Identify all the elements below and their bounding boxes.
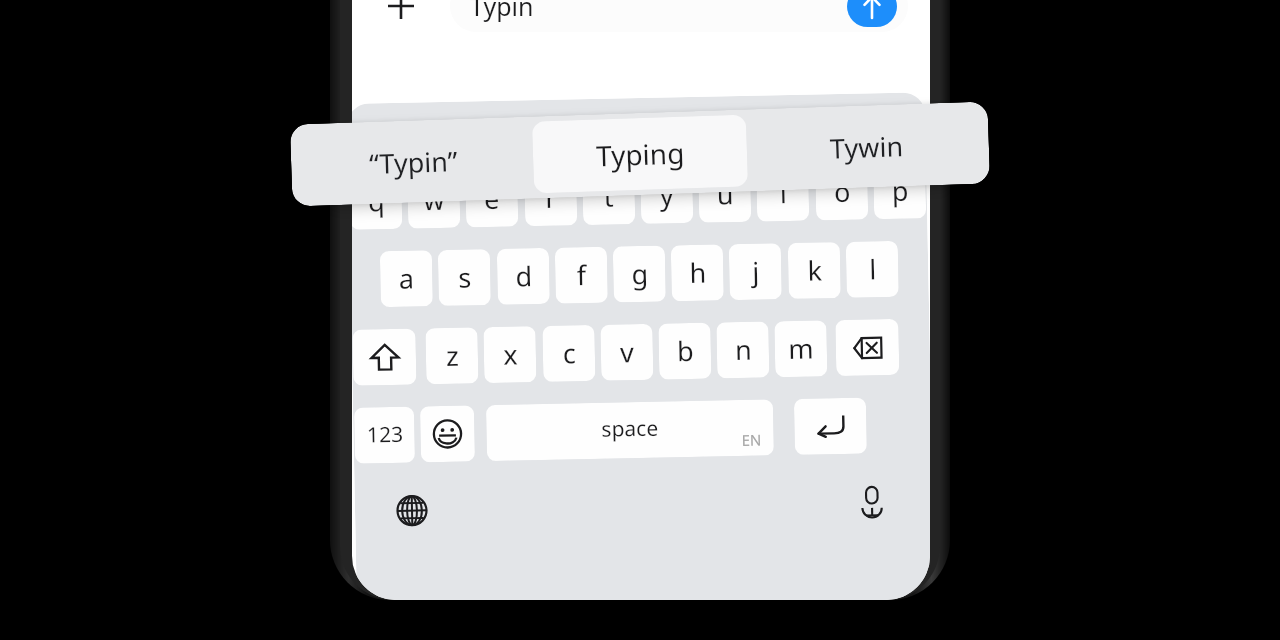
- staticText: u: [716, 175, 734, 212]
- button[interactable]: Shift: [352, 328, 416, 386]
- button[interactable]: x: [483, 326, 536, 383]
- staticText: Typing: [595, 133, 686, 174]
- button[interactable]: h: [671, 244, 724, 301]
- staticText: e: [483, 180, 500, 217]
- staticText: k: [807, 251, 823, 289]
- button[interactable]: Add attachment: [375, 0, 427, 32]
- staticText: c: [562, 334, 576, 372]
- button[interactable]: Voice input: [848, 478, 895, 525]
- staticText: p: [891, 172, 909, 209]
- button[interactable]: Change language: [389, 487, 435, 534]
- button[interactable]: “Typin”: [296, 122, 530, 201]
- button[interactable]: j: [729, 243, 782, 300]
- staticText: n: [734, 331, 752, 368]
- button[interactable]: q: [352, 173, 402, 230]
- staticText: o: [833, 173, 851, 210]
- staticText: q: [367, 182, 385, 219]
- staticText: i: [779, 174, 787, 211]
- button[interactable]: g: [613, 245, 666, 302]
- staticText: Tywin: [829, 127, 904, 167]
- staticText: b: [676, 332, 694, 369]
- button[interactable]: t: [582, 168, 635, 225]
- button[interactable]: i: [756, 165, 809, 222]
- button[interactable]: p: [873, 162, 926, 219]
- button[interactable]: Enter: [794, 397, 867, 455]
- staticText: x: [502, 335, 518, 373]
- staticText: r: [544, 179, 557, 216]
- staticText: 123: [366, 420, 404, 449]
- staticText: f: [576, 256, 587, 293]
- button[interactable]: b: [658, 323, 711, 380]
- button[interactable]: s: [438, 249, 491, 306]
- button[interactable]: o: [815, 163, 868, 220]
- button[interactable]: 123: [354, 407, 415, 464]
- button[interactable]: m: [774, 320, 827, 377]
- staticText: d: [515, 257, 533, 294]
- button[interactable]: y: [640, 167, 693, 224]
- button[interactable]: c: [542, 325, 595, 382]
- button[interactable]: u: [698, 166, 751, 223]
- staticText: space: [601, 414, 659, 444]
- button[interactable]: Tywin: [750, 107, 984, 186]
- button[interactable]: space: [486, 399, 774, 461]
- staticText: Typin: [470, 0, 534, 23]
- button[interactable]: Typing: [532, 114, 748, 194]
- button[interactable]: v: [600, 324, 653, 381]
- staticText: j: [752, 253, 760, 290]
- button[interactable]: Send: [847, 0, 897, 27]
- staticText: z: [445, 337, 459, 374]
- staticText: t: [603, 177, 614, 215]
- button[interactable]: Typin: [450, 0, 908, 32]
- button[interactable]: k: [788, 242, 841, 299]
- staticText: EN: [741, 430, 762, 450]
- staticText: v: [619, 333, 634, 370]
- button[interactable]: e: [465, 170, 518, 227]
- staticText: y: [659, 176, 674, 214]
- button[interactable]: f: [555, 247, 608, 304]
- staticText: g: [631, 255, 649, 292]
- button[interactable]: l: [846, 241, 899, 298]
- staticText: s: [458, 258, 472, 296]
- button[interactable]: a: [380, 250, 433, 307]
- staticText: “Typin”: [369, 142, 459, 182]
- staticText: w: [422, 181, 445, 218]
- button[interactable]: Emoji: [420, 405, 475, 462]
- button[interactable]: d: [497, 248, 550, 305]
- button[interactable]: z: [425, 327, 478, 384]
- staticText: a: [398, 259, 415, 297]
- button[interactable]: n: [716, 321, 769, 378]
- button[interactable]: Backspace: [835, 319, 899, 376]
- button[interactable]: r: [524, 169, 577, 226]
- staticText: m: [787, 329, 814, 367]
- staticText: h: [689, 254, 707, 291]
- staticText: l: [869, 250, 877, 287]
- button[interactable]: w: [407, 172, 460, 229]
